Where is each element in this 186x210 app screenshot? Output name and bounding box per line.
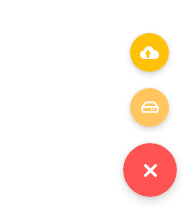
button[interactable]: Local storage: [130, 88, 169, 127]
button[interactable]: Back up to cloud: [130, 33, 169, 72]
button[interactable]: Close menu: [123, 143, 177, 197]
